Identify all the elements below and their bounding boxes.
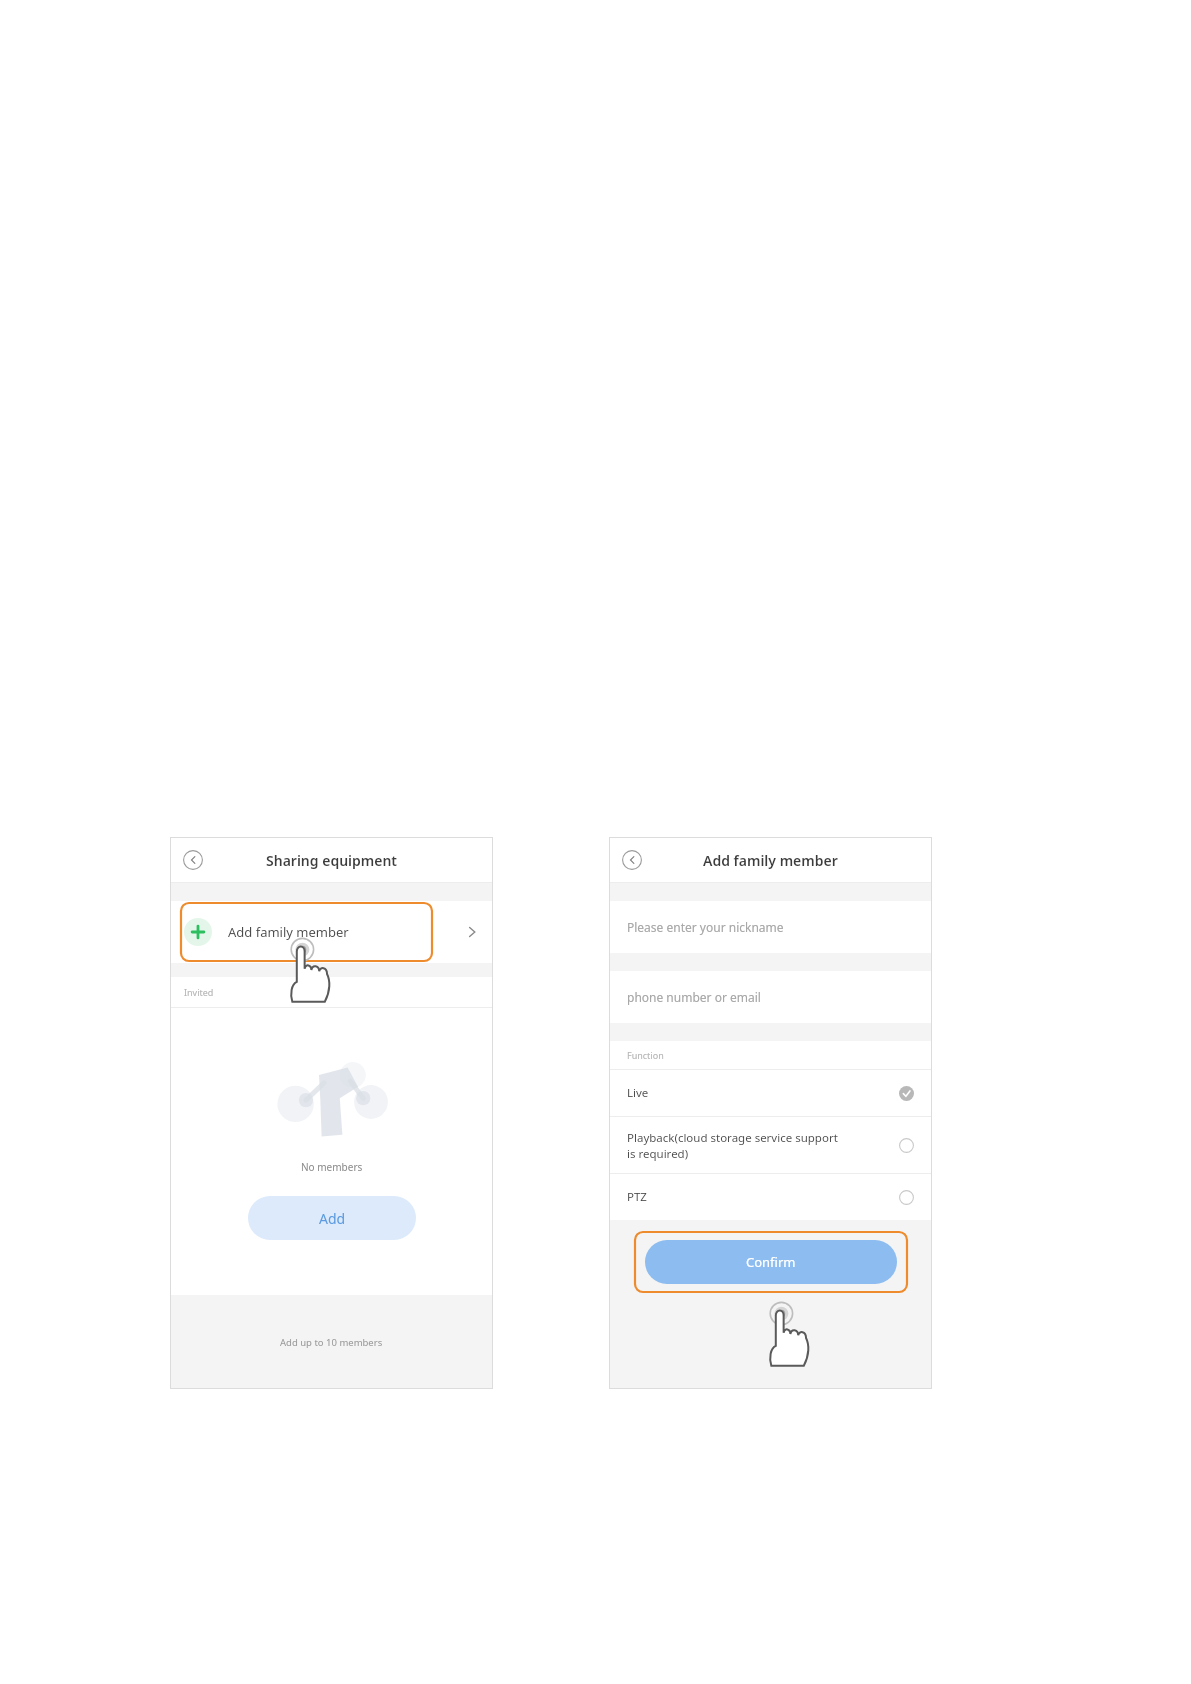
- button[interactable]: Add family member: [170, 901, 493, 963]
- button[interactable]: Add: [248, 1196, 416, 1240]
- staticText: Confirm: [746, 1253, 796, 1271]
- staticText: Add family member: [703, 851, 838, 870]
- staticText: Add up to 10 members: [280, 1336, 383, 1349]
- button[interactable]: Live: [609, 1070, 932, 1116]
- staticText: Invited: [184, 986, 214, 998]
- button[interactable]: Back: [619, 847, 645, 873]
- staticText: Live: [627, 1085, 889, 1101]
- staticText: phone number or email: [627, 989, 761, 1005]
- staticText: Sharing equipment: [266, 851, 398, 870]
- button[interactable]: Confirm: [645, 1240, 897, 1284]
- button[interactable]: Playback(cloud storage service support i…: [609, 1117, 932, 1173]
- staticText: Function: [627, 1049, 664, 1061]
- staticText: PTZ: [627, 1189, 889, 1205]
- button[interactable]: phone number or email: [609, 971, 932, 1023]
- staticText: Playback(cloud storage service support i…: [627, 1130, 889, 1161]
- button[interactable]: PTZ: [609, 1174, 932, 1220]
- staticText: Add family member: [228, 923, 349, 941]
- staticText: Add: [319, 1209, 346, 1228]
- button[interactable]: Please enter your nickname: [609, 901, 932, 953]
- button[interactable]: Back: [180, 847, 206, 873]
- staticText: Please enter your nickname: [627, 919, 784, 935]
- staticText: No members: [301, 1160, 363, 1174]
